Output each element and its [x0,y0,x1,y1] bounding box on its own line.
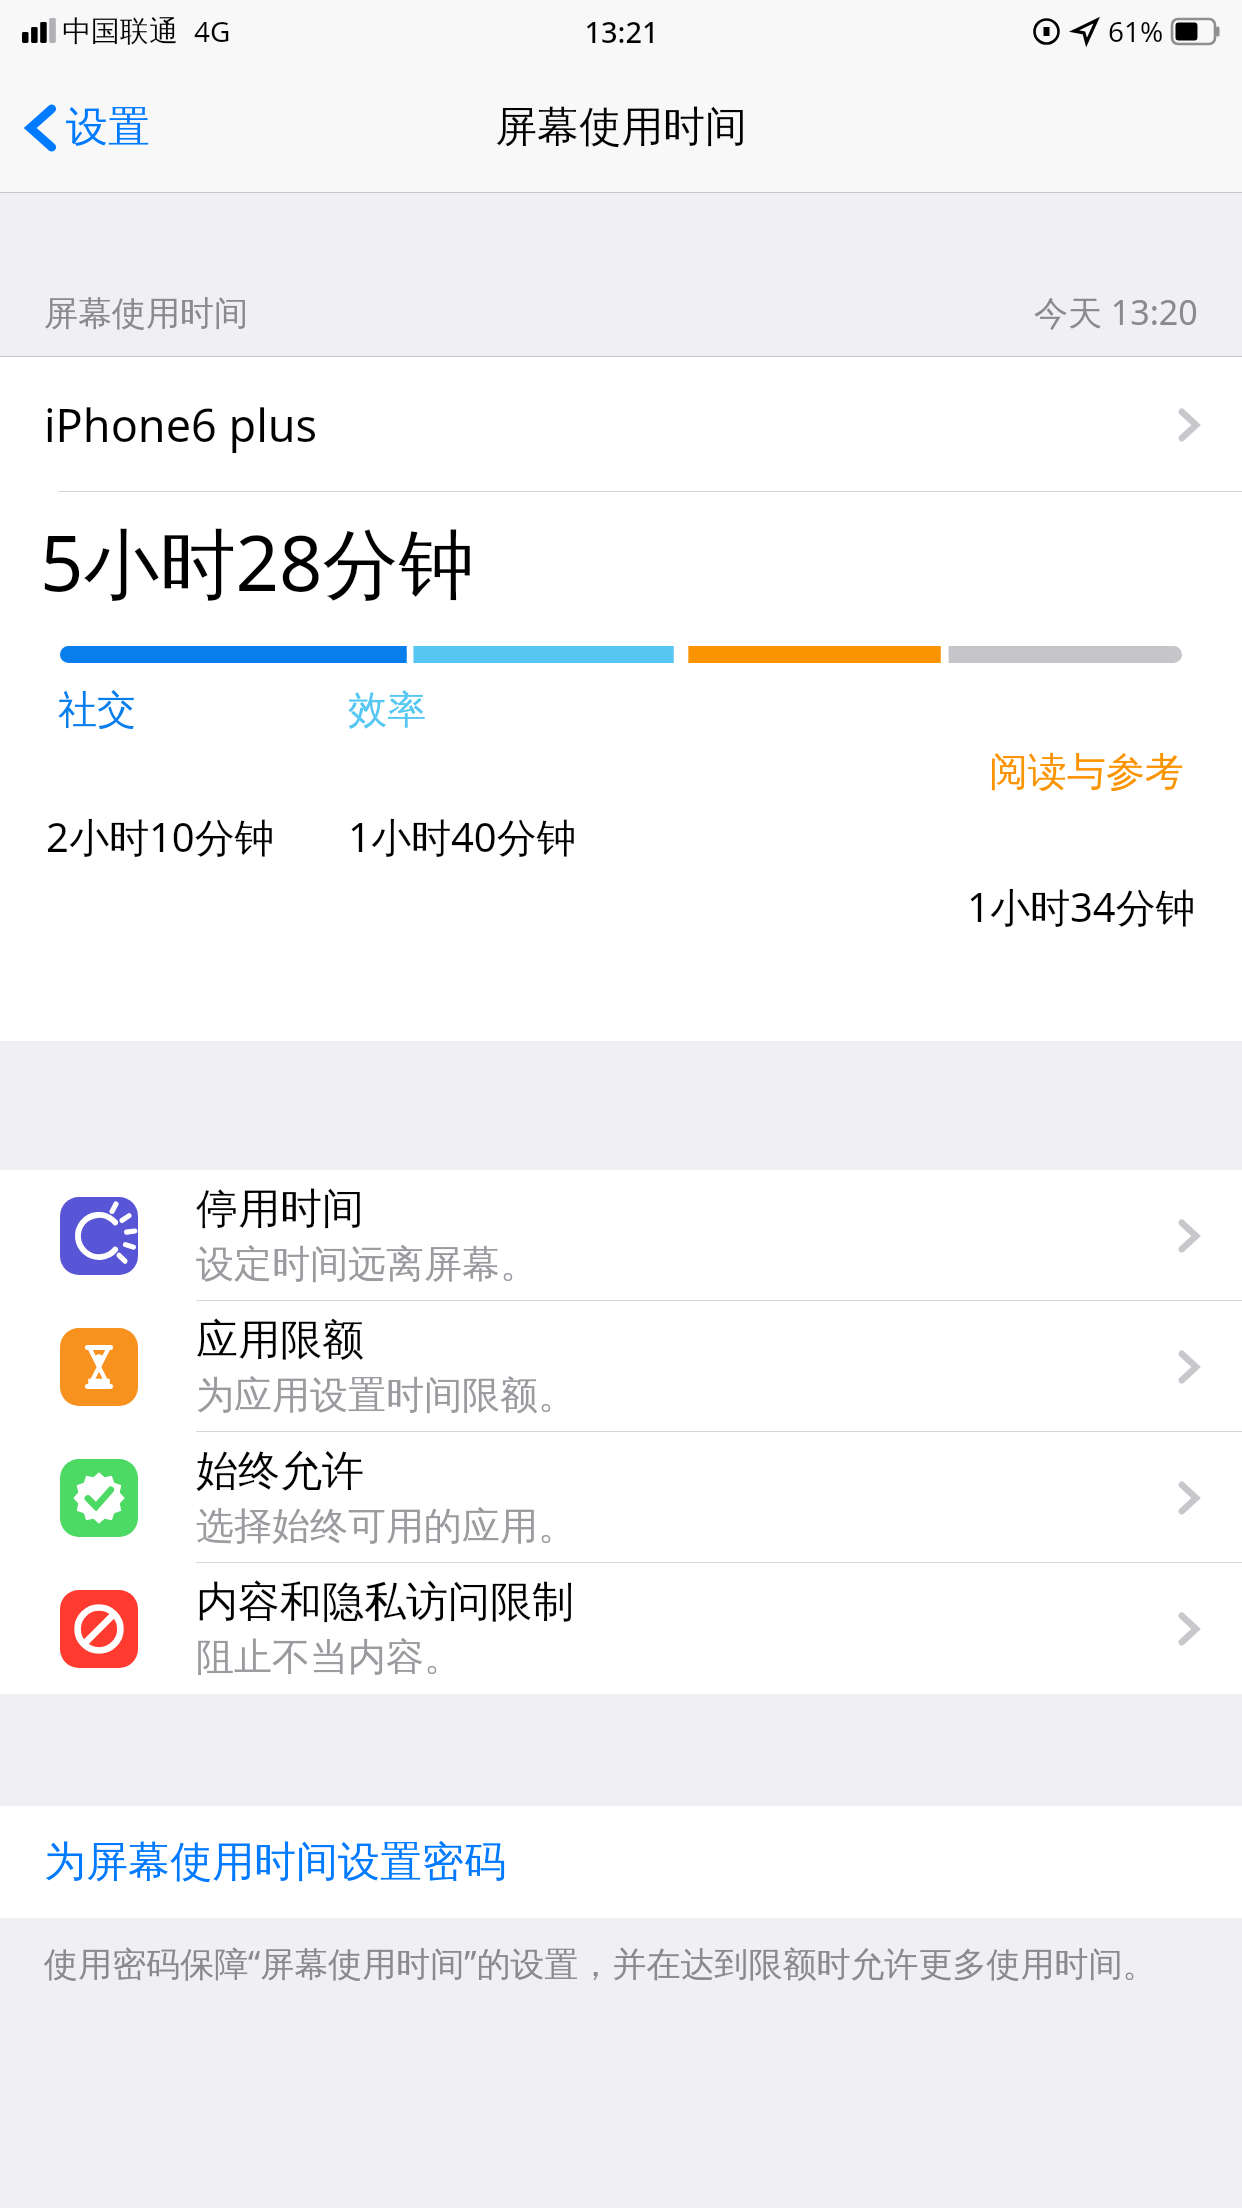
staticText: 选择始终可用的应用。 [196,1502,576,1550]
other: 内容和隐私访问限制 [60,1590,138,1668]
staticText: 2小时10分钟 [46,809,275,864]
staticText: 始终允许 [196,1445,364,1498]
button[interactable]: 始终允许 [0,1432,1242,1563]
staticText: 5小时28分钟 [40,510,475,614]
other: 始终允许 [60,1459,138,1537]
staticText: 为屏幕使用时间设置密码 [44,1836,506,1889]
staticText: 效率 [348,685,426,734]
staticText: 使用密码保障“屏幕使用时间”的设置，并在达到限额时允许更多使用时间。 [44,1940,1157,1986]
staticText: 1小时40分钟 [348,809,577,864]
staticText: 中国联通 [62,13,178,50]
staticText: 阻止不当内容。 [196,1633,462,1681]
staticText: 屏幕使用时间 [44,292,248,335]
staticText: 13:21 [584,12,659,51]
button[interactable]: 停用时间 [0,1170,1242,1301]
button[interactable]: 为屏幕使用时间设置密码 [0,1806,1242,1918]
staticText: 设置 [66,101,150,154]
staticText: 应用限额 [196,1314,364,1367]
staticText: 为应用设置时间限额。 [196,1371,576,1419]
button[interactable]: iPhone6 plus [0,357,1242,492]
staticText: 阅读与参考 [989,747,1184,796]
staticText: 4G [194,12,231,50]
other: 应用限额 [60,1328,138,1406]
other: 停用时间 [60,1197,138,1275]
button[interactable]: 应用限额 [0,1301,1242,1432]
staticText: 今天 13:20 [1034,289,1198,335]
button[interactable]: 设置 [26,101,150,154]
staticText: 1小时34分钟 [967,879,1196,934]
staticText: 停用时间 [196,1183,364,1236]
staticText: iPhone6 plus [44,394,318,455]
staticText: 屏幕使用时间 [495,101,747,154]
staticText: 内容和隐私访问限制 [196,1576,574,1629]
staticText: 61% [1108,12,1164,50]
staticText: 社交 [58,685,136,734]
staticText: 设定时间远离屏幕。 [196,1240,538,1288]
button[interactable]: 内容和隐私访问限制 [0,1563,1242,1694]
